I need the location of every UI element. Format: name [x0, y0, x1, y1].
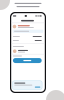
button[interactable]: [10, 58, 44, 63]
